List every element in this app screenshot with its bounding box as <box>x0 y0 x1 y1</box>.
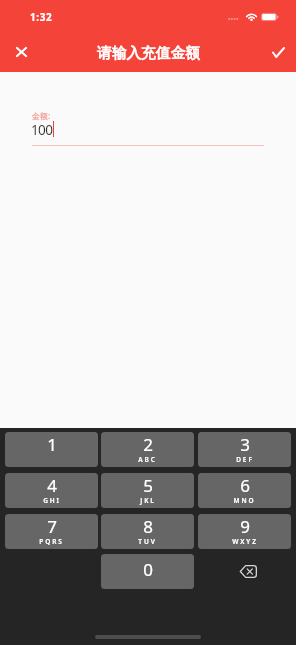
staticText: GHI <box>43 496 61 505</box>
staticText: 6 <box>240 474 250 497</box>
staticText: DEF <box>236 455 254 464</box>
staticText: MNO <box>233 496 256 505</box>
button[interactable]: 3 <box>198 432 291 467</box>
staticText: 5 <box>143 474 153 497</box>
staticText: PQRS <box>39 537 64 546</box>
staticText: 2 <box>143 433 153 456</box>
staticText: 8 <box>143 515 153 538</box>
staticText: 9 <box>240 515 250 538</box>
staticText: 1:32 <box>30 10 53 24</box>
staticText: 3 <box>240 433 250 456</box>
button[interactable]: 7 <box>5 514 98 549</box>
staticText: 0 <box>143 558 153 581</box>
staticText: WXYZ <box>232 537 258 546</box>
button[interactable]: 9 <box>198 514 291 549</box>
button[interactable]: Close <box>3 32 39 72</box>
button[interactable]: 1 <box>5 432 98 467</box>
staticText: JKL <box>140 496 156 505</box>
button[interactable]: 4 <box>5 473 98 508</box>
staticText: 4 <box>47 474 57 497</box>
staticText: 7 <box>47 515 57 538</box>
staticText: 100 <box>31 120 53 139</box>
staticText: 请输入充值金额 <box>97 44 200 63</box>
button[interactable]: 8 <box>101 514 194 549</box>
staticText: TUV <box>138 537 157 546</box>
button[interactable]: 0 <box>101 554 194 589</box>
staticText: 1 <box>47 433 57 456</box>
button[interactable]: 2 <box>101 432 194 467</box>
button[interactable]: 6 <box>198 473 291 508</box>
button[interactable]: 5 <box>101 473 194 508</box>
button[interactable]: Confirm <box>260 32 296 72</box>
button[interactable]: Backspace <box>198 554 291 589</box>
staticText: ABC <box>138 455 157 464</box>
staticText: 金额: <box>32 110 51 121</box>
